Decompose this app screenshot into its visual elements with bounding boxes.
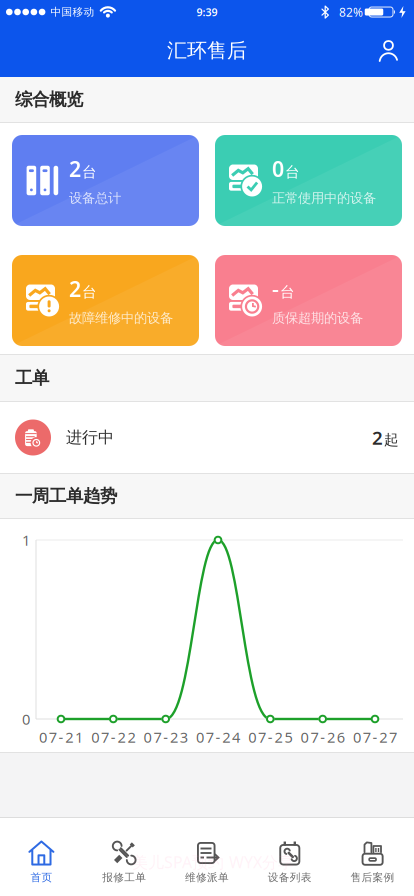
staticText: 正常使用中的设备 [272,190,376,206]
staticText: 中国移动 [50,5,94,18]
staticText: 设备总计 [69,190,121,206]
staticText: 9:39 [196,5,217,19]
staticText: 台 [285,163,300,181]
staticText: 起 [384,431,399,449]
staticText: 82% [339,4,363,20]
button[interactable]: 用户 [378,40,414,61]
staticText: 售后案例 [351,871,395,884]
button[interactable]: 2 [12,135,199,226]
staticText: 07-25 [248,727,292,747]
staticText: 台 [82,283,97,301]
button[interactable]: 售后案例 [331,839,414,884]
staticText: 台 [280,283,295,301]
staticText: 首页 [30,871,52,884]
button[interactable]: 0 [215,135,402,226]
staticText: 台 [82,163,97,181]
staticText: 维修派单 [185,871,229,884]
button[interactable]: 维修派单 [166,839,248,884]
staticText: 工单 [15,367,49,389]
staticText: 2 [69,275,81,303]
staticText: - [272,275,279,303]
button[interactable]: 2 [12,255,199,346]
button[interactable]: 首页 [0,839,83,884]
staticText: 设备列表 [268,871,312,884]
staticText: 汇环售后 [167,38,247,63]
staticText: 07-26 [301,727,345,747]
staticText: 综合概览 [15,89,83,110]
staticText: 0 [272,155,284,183]
staticText: 进行中 [66,428,114,447]
staticText: 07-27 [353,727,397,747]
staticText: 报修工单 [102,871,146,884]
staticText: 质保超期的设备 [272,310,363,326]
button[interactable]: 报修工单 [83,839,166,884]
staticText: 07-24 [196,727,240,747]
staticText: 故障维修中的设备 [69,310,173,326]
staticText: 07-22 [91,727,135,747]
staticText: 2 [372,425,383,450]
staticText: 2 [69,155,81,183]
staticText: 1 [22,530,30,550]
staticText: 美儿SPA预约 WYX分享 [132,851,294,873]
button[interactable]: 进行中 [0,402,414,473]
staticText: 一周工单趋势 [15,485,117,507]
staticText: 0 [22,709,30,729]
button[interactable]: - [215,255,402,346]
button[interactable]: 设备列表 [248,839,331,884]
staticText: 07-21 [39,727,83,747]
staticText: 07-23 [144,727,188,747]
